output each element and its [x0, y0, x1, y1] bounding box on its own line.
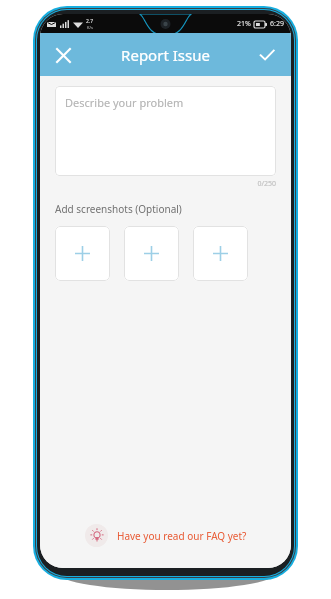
staticText: Describe your problem	[65, 95, 184, 110]
staticText: 6:29	[270, 19, 284, 29]
button[interactable]: Close	[46, 38, 80, 72]
staticText: 21%	[237, 19, 251, 29]
button[interactable]: Add screenshot 1	[55, 226, 110, 281]
button[interactable]: Add screenshot 2	[124, 226, 179, 281]
staticText: Add screenshots (Optional)	[55, 202, 182, 216]
staticText: Have you read our FAQ yet?	[117, 529, 247, 543]
staticText: 0/250	[55, 179, 276, 189]
staticText: K/s	[87, 25, 93, 30]
button[interactable]: Describe your problem	[55, 86, 276, 176]
staticText: Report Issue	[121, 45, 210, 65]
staticText: 2.7	[86, 18, 94, 25]
button[interactable]: Add screenshot 3	[193, 226, 248, 281]
button[interactable]: Submit	[250, 38, 284, 72]
button[interactable]: Have you read our FAQ yet?	[79, 521, 253, 550]
